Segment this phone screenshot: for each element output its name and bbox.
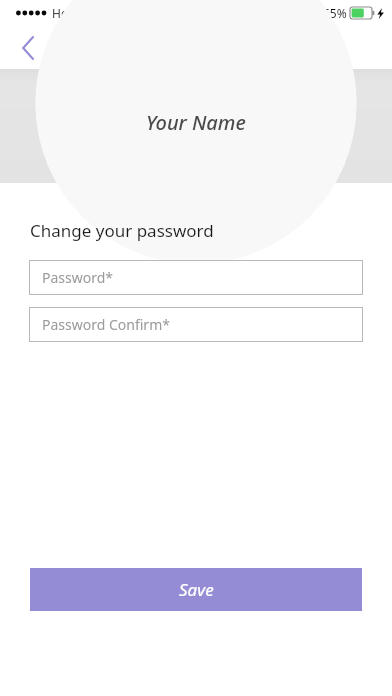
staticText: Home	[52, 5, 87, 21]
button[interactable]: Back	[8, 28, 48, 68]
staticText: Save	[179, 578, 214, 601]
button[interactable]: Password Confirm*	[29, 307, 363, 342]
staticText: Password Confirm*	[42, 315, 170, 334]
staticText: Change your password	[30, 219, 214, 242]
staticText: 65%	[323, 5, 347, 21]
button[interactable]: Save	[30, 568, 362, 611]
staticText: Your Name	[146, 109, 246, 136]
staticText: Password*	[42, 268, 114, 287]
button[interactable]: Password*	[29, 260, 363, 295]
